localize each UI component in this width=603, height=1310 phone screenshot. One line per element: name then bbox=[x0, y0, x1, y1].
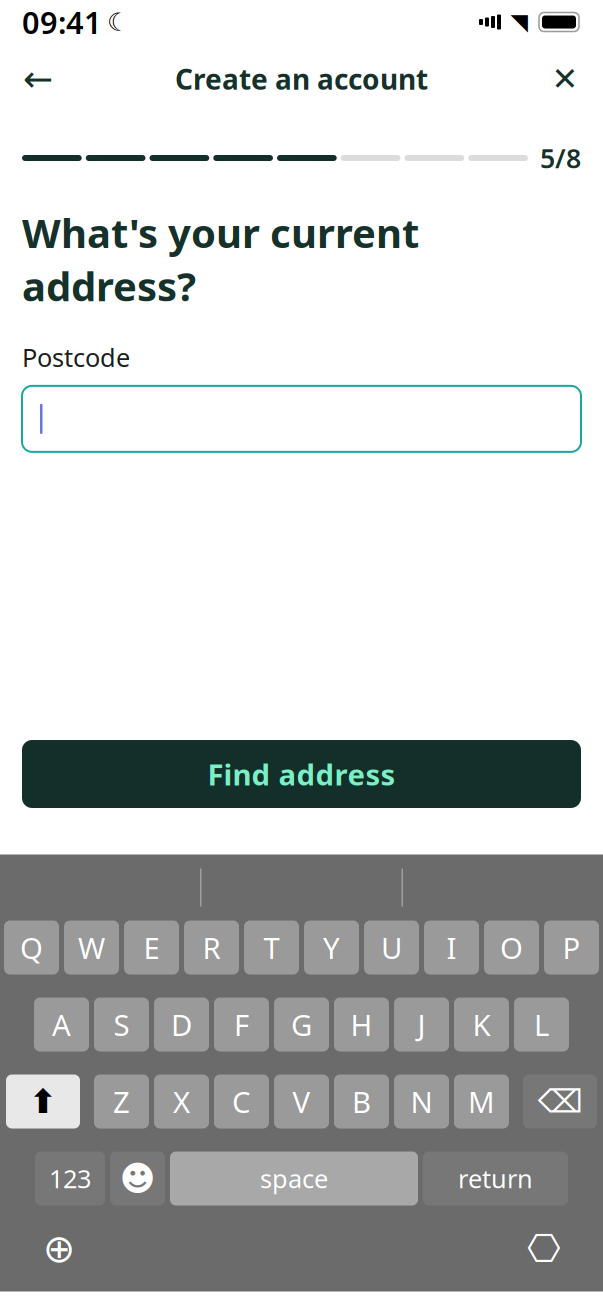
staticText: D bbox=[171, 1005, 192, 1044]
staticText: W bbox=[78, 928, 105, 967]
staticText: C bbox=[232, 1082, 251, 1121]
staticText: E bbox=[143, 928, 159, 967]
staticText: ← bbox=[23, 59, 53, 99]
button[interactable]: D bbox=[154, 997, 209, 1051]
staticText: T bbox=[263, 928, 279, 967]
button[interactable]: space bbox=[170, 1151, 418, 1205]
staticText: return bbox=[458, 1162, 533, 1195]
staticText: Y bbox=[323, 928, 340, 967]
button[interactable]: return bbox=[423, 1151, 568, 1205]
button[interactable]: W bbox=[64, 920, 119, 974]
button[interactable]: O bbox=[484, 920, 539, 974]
staticText: H bbox=[350, 1005, 372, 1044]
staticText: 09:41 bbox=[22, 2, 102, 42]
button[interactable]: M bbox=[454, 1074, 509, 1128]
staticText: U bbox=[381, 928, 402, 967]
staticText: O bbox=[500, 928, 523, 967]
button[interactable]: 123 bbox=[35, 1151, 105, 1205]
button[interactable]: V bbox=[274, 1074, 329, 1128]
button[interactable]: X bbox=[154, 1074, 209, 1128]
staticText: Q bbox=[20, 928, 43, 967]
button[interactable]: Close bbox=[543, 57, 587, 101]
staticText: ⬆ bbox=[29, 1083, 57, 1120]
button[interactable]: Y bbox=[304, 920, 359, 974]
staticText: ☾ bbox=[107, 8, 130, 36]
button[interactable]: Emoji bbox=[110, 1151, 165, 1205]
staticText: ✕ bbox=[551, 61, 578, 97]
button[interactable]: A bbox=[34, 997, 89, 1051]
staticText: 5/8 bbox=[540, 140, 581, 176]
button[interactable]: G bbox=[274, 997, 329, 1051]
button[interactable]: N bbox=[394, 1074, 449, 1128]
staticText: J bbox=[417, 1005, 425, 1044]
staticText: P bbox=[562, 928, 580, 967]
button[interactable]: P bbox=[544, 920, 599, 974]
button[interactable]: F bbox=[214, 997, 269, 1051]
button[interactable]: R bbox=[184, 920, 239, 974]
staticText: ⎔ bbox=[527, 1227, 561, 1270]
staticText: G bbox=[291, 1005, 312, 1044]
button[interactable]: U bbox=[364, 920, 419, 974]
button[interactable]: Shift bbox=[6, 1074, 80, 1128]
staticText: 123 bbox=[49, 1162, 91, 1195]
button[interactable]: B bbox=[334, 1074, 389, 1128]
staticText: F bbox=[234, 1005, 249, 1044]
staticText: K bbox=[472, 1005, 490, 1044]
staticText: ◥ bbox=[510, 9, 527, 35]
staticText: space bbox=[260, 1162, 328, 1195]
staticText: M bbox=[468, 1082, 495, 1121]
button[interactable]: Delete bbox=[523, 1074, 597, 1128]
button[interactable]: K bbox=[454, 997, 509, 1051]
staticText: Create an account bbox=[175, 60, 428, 98]
staticText: Z bbox=[113, 1082, 130, 1121]
staticText: L bbox=[534, 1005, 549, 1044]
button[interactable]: Back bbox=[16, 57, 60, 101]
staticText: ⌫ bbox=[537, 1083, 582, 1120]
staticText: A bbox=[52, 1005, 71, 1044]
staticText: X bbox=[173, 1082, 190, 1121]
button[interactable]: H bbox=[334, 997, 389, 1051]
staticText: ⊕ bbox=[43, 1227, 75, 1270]
staticText: B bbox=[352, 1082, 371, 1121]
button[interactable]: I bbox=[424, 920, 479, 974]
staticText: Postcode bbox=[22, 340, 130, 374]
button[interactable]: Change keyboard bbox=[32, 1221, 86, 1275]
button[interactable]: T bbox=[244, 920, 299, 974]
staticText: S bbox=[113, 1005, 129, 1044]
staticText: R bbox=[202, 928, 220, 967]
staticText: What's your current address? bbox=[22, 206, 419, 312]
button[interactable]: Z bbox=[94, 1074, 149, 1128]
button[interactable]: J bbox=[394, 997, 449, 1051]
staticText: V bbox=[292, 1082, 310, 1121]
button[interactable]: C bbox=[214, 1074, 269, 1128]
button[interactable]: S bbox=[94, 997, 149, 1051]
button[interactable]: Q bbox=[4, 920, 59, 974]
staticText: I bbox=[446, 928, 456, 967]
button[interactable]: Dictation bbox=[517, 1221, 571, 1275]
staticText: ☻ bbox=[119, 1159, 155, 1198]
staticText: N bbox=[410, 1082, 432, 1121]
button[interactable]: L bbox=[514, 997, 569, 1051]
staticText: Find address bbox=[207, 754, 395, 793]
button[interactable]: Find address bbox=[22, 740, 581, 808]
button[interactable]: E bbox=[124, 920, 179, 974]
